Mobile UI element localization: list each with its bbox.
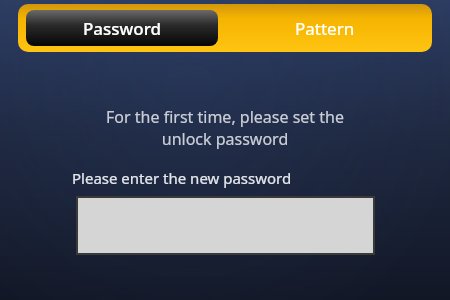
button[interactable]: Pattern: [218, 4, 432, 52]
staticText: Pattern: [295, 17, 355, 40]
staticText: Please enter the new password: [72, 168, 292, 188]
button[interactable]: Password: [26, 10, 218, 46]
staticText: For the first time, please set the unloc…: [44, 106, 406, 150]
staticText: Password: [83, 17, 162, 40]
